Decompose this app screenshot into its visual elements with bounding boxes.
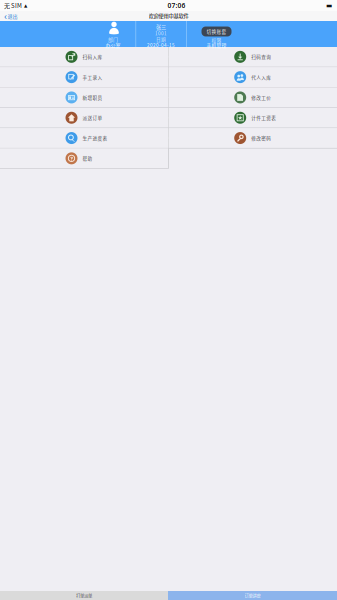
button[interactable]: 修改密码 bbox=[169, 128, 337, 148]
staticText: ▬ bbox=[326, 2, 332, 9]
staticText: ▴ bbox=[24, 2, 27, 9]
button[interactable]: ‹ bbox=[0, 11, 23, 21]
button[interactable]: 打单派单 bbox=[0, 591, 168, 600]
staticText: 2020-04-15 bbox=[147, 42, 175, 48]
staticText: 07:06 bbox=[167, 1, 185, 10]
button[interactable]: 扫码入库 bbox=[0, 47, 168, 67]
button[interactable]: 手工录入 bbox=[0, 67, 168, 87]
staticText: 修改工价 bbox=[251, 94, 271, 101]
staticText: 生产进度表 bbox=[82, 135, 107, 141]
button[interactable]: 扫码查询 bbox=[169, 47, 337, 67]
staticText: 办公室 bbox=[105, 41, 120, 48]
staticText: 扫码入库 bbox=[82, 53, 102, 60]
staticText: ‹ bbox=[4, 10, 7, 22]
button[interactable]: 代人入库 bbox=[169, 67, 337, 87]
staticText: 新增职员 bbox=[82, 94, 102, 101]
button[interactable]: 派送订单 bbox=[0, 108, 168, 128]
button[interactable]: 订单进度 bbox=[168, 591, 337, 600]
button[interactable]: 切换账套 bbox=[201, 26, 231, 36]
staticText: 打单派单 bbox=[76, 592, 92, 599]
staticText: 张三 bbox=[156, 23, 166, 31]
staticText: 扫码查询 bbox=[251, 53, 271, 60]
staticText: 日期 bbox=[156, 36, 166, 43]
staticText: 1001 bbox=[155, 30, 167, 36]
staticText: 代人入库 bbox=[251, 74, 271, 80]
button[interactable]: 新增职员 bbox=[0, 88, 168, 107]
staticText: 手机管理 bbox=[206, 42, 226, 49]
staticText: 欢迎使用中基软件 bbox=[148, 12, 188, 20]
staticText: 无 SIM bbox=[4, 1, 22, 10]
staticText: 派送订单 bbox=[82, 114, 102, 121]
staticText: 手工录入 bbox=[82, 74, 102, 80]
button[interactable]: 修改工价 bbox=[169, 88, 337, 107]
staticText: 权限 bbox=[211, 36, 221, 43]
staticText: 部门 bbox=[108, 36, 118, 43]
staticText: 修改密码 bbox=[251, 135, 271, 141]
button[interactable]: 生产进度表 bbox=[0, 128, 168, 148]
staticText: 帮助 bbox=[82, 155, 92, 162]
staticText: 切换账套 bbox=[206, 28, 226, 35]
staticText: 计件工资表 bbox=[251, 114, 276, 121]
button[interactable]: 计件工资表 bbox=[169, 108, 337, 128]
staticText: 订单进度 bbox=[244, 592, 260, 599]
button[interactable]: 帮助 bbox=[0, 148, 168, 168]
staticText: 退出 bbox=[7, 12, 17, 20]
